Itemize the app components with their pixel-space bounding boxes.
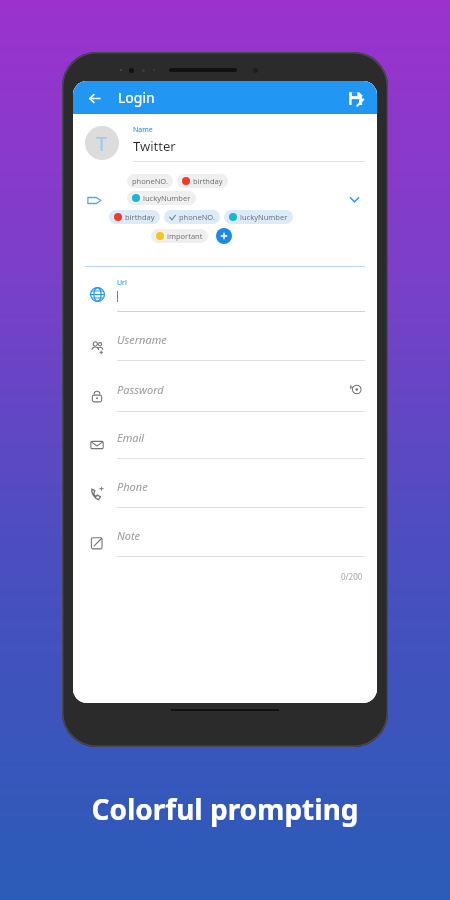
button[interactable]: phoneNO.	[164, 210, 220, 224]
button[interactable]: Add tag	[216, 228, 232, 244]
staticText: Url	[117, 278, 127, 288]
staticText: phoneNO.	[132, 176, 168, 186]
staticText: T	[96, 130, 108, 157]
staticText: Username	[117, 332, 365, 347]
button[interactable]: Username	[85, 322, 365, 371]
staticText: Colorful prompting	[91, 790, 359, 828]
staticText: 0/200	[341, 571, 363, 582]
button[interactable]: luckyNumber	[224, 210, 293, 224]
button[interactable]: Password	[85, 371, 365, 420]
button[interactable]: Expand tags	[345, 190, 363, 208]
staticText: Login	[118, 88, 155, 107]
staticText: Twitter	[133, 137, 176, 155]
staticText: Note	[117, 528, 365, 543]
staticText: Name	[133, 125, 153, 135]
button[interactable]: Email	[85, 420, 365, 469]
button[interactable]: T	[85, 114, 365, 172]
button[interactable]: phoneNO.	[127, 174, 173, 188]
button[interactable]: Phone	[85, 469, 365, 518]
staticText: Email	[117, 430, 365, 445]
staticText: Phone	[117, 479, 365, 494]
button[interactable]: Save	[341, 84, 369, 112]
button[interactable]: Url	[85, 267, 365, 322]
staticText: luckyNumber	[143, 193, 191, 203]
button[interactable]: luckyNumber	[127, 191, 196, 205]
staticText: phoneNO.	[179, 212, 215, 222]
button[interactable]: birthday	[177, 174, 228, 188]
button[interactable]: important	[151, 229, 208, 243]
staticText: luckyNumber	[240, 212, 288, 222]
staticText: important	[167, 231, 203, 241]
button[interactable]: Back	[79, 83, 109, 113]
button[interactable]: birthday	[109, 210, 160, 224]
staticText: Password	[117, 382, 347, 397]
staticText: birthday	[193, 176, 223, 186]
staticText: birthday	[125, 212, 155, 222]
button[interactable]: Note	[85, 518, 365, 567]
button[interactable]: Show password	[347, 380, 365, 398]
button[interactable]: Tags	[87, 193, 102, 208]
